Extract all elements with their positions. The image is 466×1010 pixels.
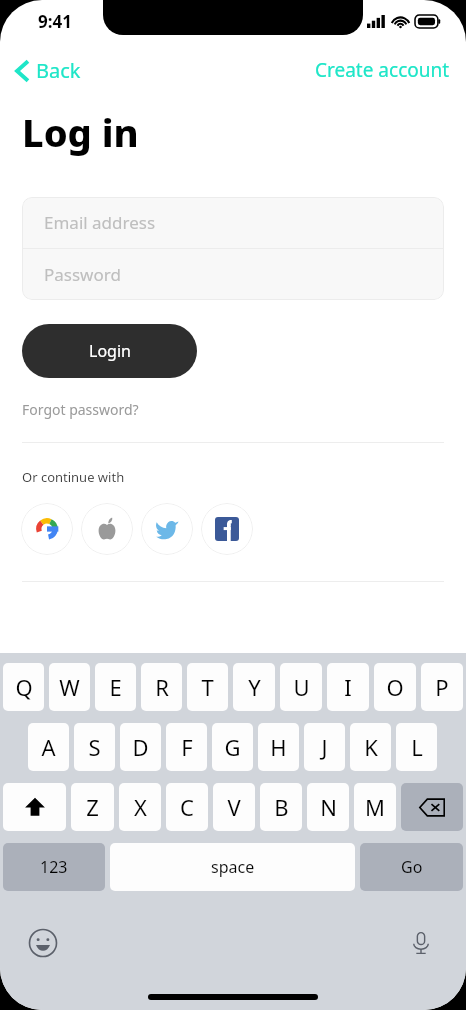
button[interactable]: P bbox=[421, 663, 463, 711]
staticText: Log in bbox=[22, 106, 139, 158]
staticText: Back bbox=[36, 57, 81, 84]
button[interactable]: T bbox=[187, 663, 228, 711]
staticText: M bbox=[365, 792, 385, 822]
staticText: L bbox=[411, 732, 423, 762]
button[interactable]: Login bbox=[22, 324, 197, 378]
staticText: S bbox=[88, 732, 101, 762]
button[interactable]: L bbox=[396, 723, 437, 771]
staticText: A bbox=[41, 732, 56, 762]
staticText: K bbox=[364, 732, 378, 762]
button[interactable]: I bbox=[327, 663, 369, 711]
button[interactable]: Shift bbox=[3, 783, 66, 831]
button[interactable]: J bbox=[304, 723, 345, 771]
staticText: Or continue with bbox=[22, 468, 125, 486]
staticText: Password bbox=[44, 263, 121, 286]
staticText: P bbox=[435, 672, 449, 702]
button[interactable]: Sign in with Google bbox=[21, 503, 73, 555]
button[interactable]: H bbox=[258, 723, 299, 771]
button[interactable]: Back bbox=[12, 53, 85, 88]
staticText: U bbox=[293, 672, 310, 702]
button[interactable]: Email address bbox=[22, 197, 444, 248]
button[interactable]: V bbox=[213, 783, 255, 831]
staticText: J bbox=[321, 732, 328, 762]
button[interactable]: C bbox=[166, 783, 208, 831]
button[interactable]: E bbox=[95, 663, 136, 711]
button[interactable]: Dictation bbox=[404, 926, 438, 960]
staticText: space bbox=[211, 856, 255, 878]
button[interactable]: Backspace bbox=[401, 783, 463, 831]
button[interactable]: O bbox=[374, 663, 416, 711]
button[interactable]: S bbox=[74, 723, 115, 771]
button[interactable]: space bbox=[110, 843, 355, 891]
staticText: 123 bbox=[40, 856, 68, 878]
staticText: C bbox=[180, 792, 194, 822]
staticText: B bbox=[274, 792, 289, 822]
button[interactable]: N bbox=[307, 783, 349, 831]
button[interactable]: X bbox=[119, 783, 161, 831]
staticText: Z bbox=[86, 792, 99, 822]
staticText: V bbox=[227, 792, 241, 822]
staticText: 9:41 bbox=[38, 10, 72, 33]
button[interactable]: Q bbox=[3, 663, 44, 711]
staticText: X bbox=[134, 792, 147, 822]
staticText: G bbox=[224, 732, 241, 762]
staticText: R bbox=[155, 672, 169, 702]
staticText: H bbox=[270, 732, 287, 762]
staticText: Login bbox=[89, 340, 131, 362]
staticText: Go bbox=[401, 856, 423, 878]
button[interactable]: Emoji bbox=[26, 926, 60, 960]
staticText: T bbox=[201, 672, 214, 702]
button[interactable]: Forgot password? bbox=[22, 400, 139, 419]
staticText: Q bbox=[15, 672, 33, 702]
button[interactable]: A bbox=[28, 723, 69, 771]
button[interactable]: W bbox=[49, 663, 90, 711]
staticText: Email address bbox=[44, 211, 156, 234]
staticText: E bbox=[109, 672, 122, 702]
button[interactable]: Y bbox=[233, 663, 275, 711]
button[interactable]: F bbox=[166, 723, 207, 771]
button[interactable]: Password bbox=[22, 249, 444, 300]
button[interactable]: Sign in with Facebook bbox=[201, 503, 253, 555]
button[interactable]: Go bbox=[360, 843, 463, 891]
button[interactable]: Z bbox=[71, 783, 114, 831]
staticText: W bbox=[59, 672, 80, 702]
staticText: I bbox=[344, 672, 352, 702]
staticText: Y bbox=[248, 672, 261, 702]
button[interactable]: R bbox=[141, 663, 182, 711]
button[interactable]: D bbox=[120, 723, 161, 771]
button[interactable]: B bbox=[260, 783, 302, 831]
staticText: F bbox=[181, 732, 193, 762]
staticText: N bbox=[320, 792, 337, 822]
button[interactable]: M bbox=[354, 783, 396, 831]
button[interactable]: Sign in with Apple bbox=[81, 503, 133, 555]
button[interactable]: U bbox=[280, 663, 322, 711]
staticText: D bbox=[132, 732, 149, 762]
button[interactable]: Sign in with Twitter bbox=[141, 503, 193, 555]
staticText: O bbox=[386, 672, 404, 702]
button[interactable]: K bbox=[350, 723, 391, 771]
button[interactable]: 123 bbox=[3, 843, 105, 891]
button[interactable]: Create account bbox=[311, 53, 454, 87]
button[interactable]: G bbox=[212, 723, 253, 771]
